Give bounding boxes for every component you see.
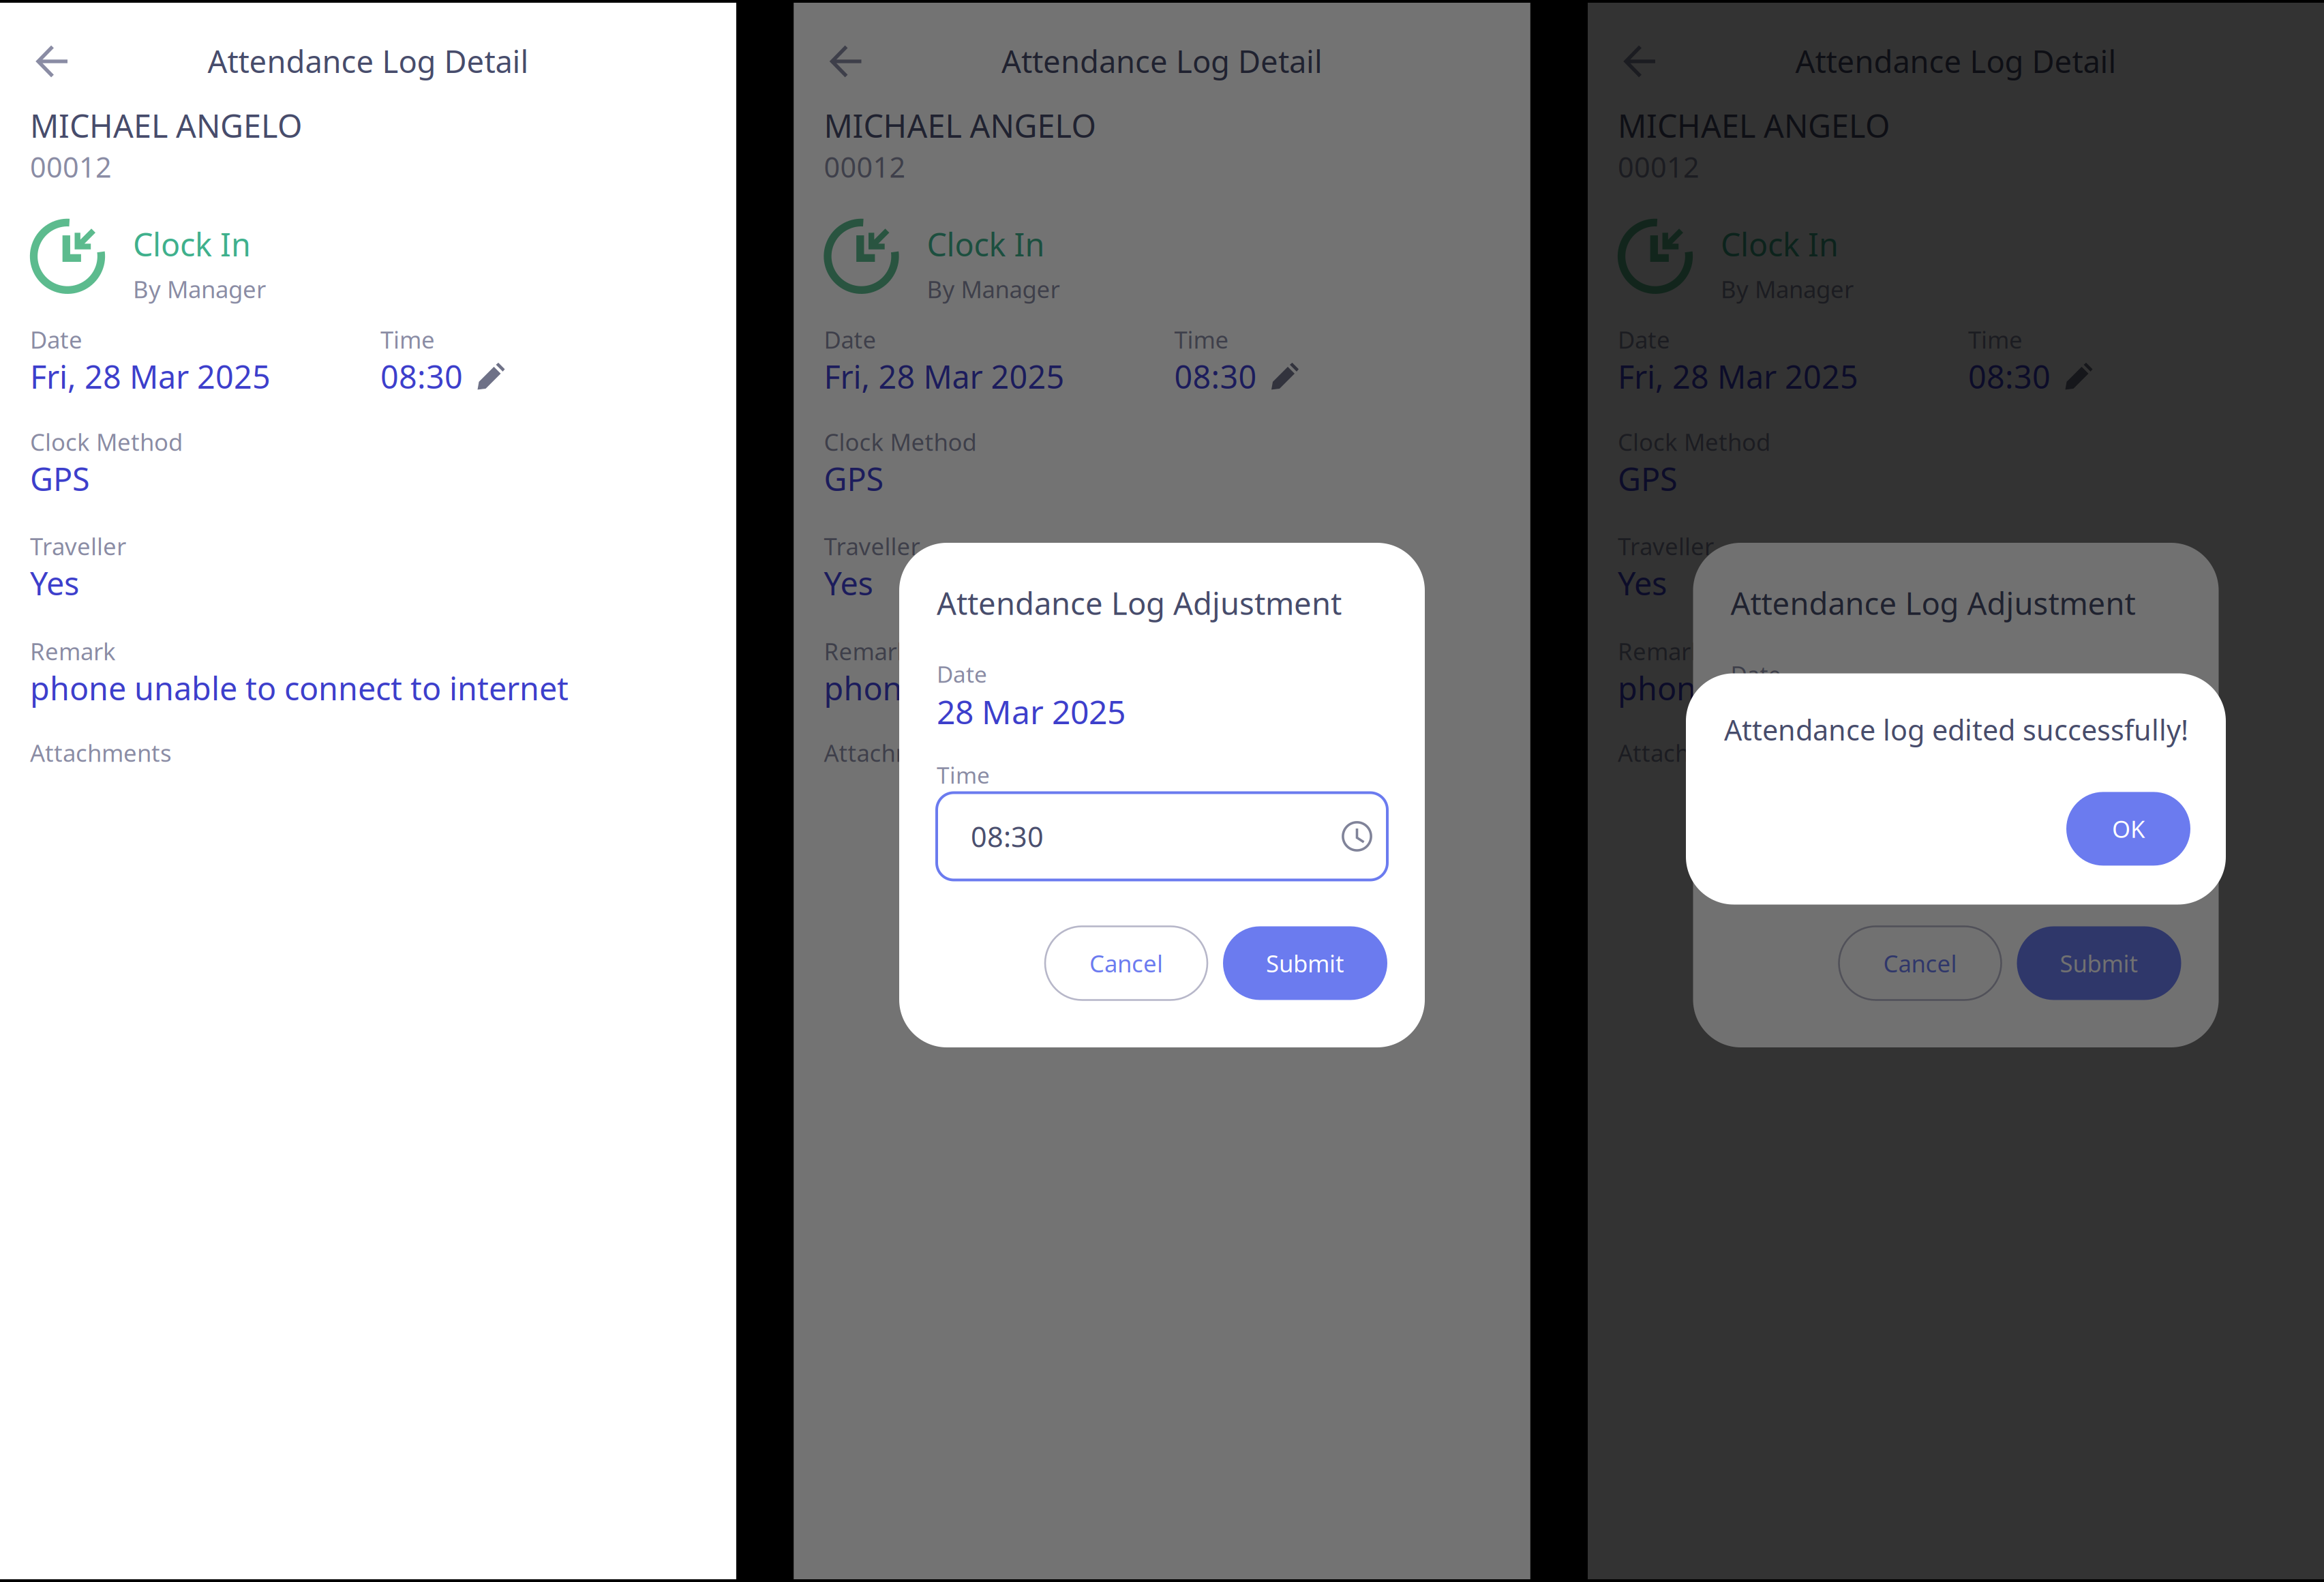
staticText: Attendance Log Adjustment <box>1731 582 2136 623</box>
staticText: Yes <box>30 562 79 604</box>
staticText: 00012 <box>30 148 112 185</box>
staticText: 28 Mar 2025 <box>1731 690 1919 733</box>
staticText: 00012 <box>1618 148 1700 185</box>
button[interactable]: OK <box>2066 792 2190 866</box>
button[interactable]: Cancel <box>1839 926 2001 1000</box>
staticText: Remark <box>824 635 910 667</box>
staticText: Remark <box>1618 635 1704 667</box>
staticText: Fri, 28 Mar 2025 <box>30 355 271 397</box>
staticText: 08:30 <box>971 818 1044 855</box>
staticText: Time <box>1174 324 1229 355</box>
staticText: By Manager <box>1721 273 1854 305</box>
staticText: Traveller <box>1618 530 1714 562</box>
staticText: Attachments <box>1618 737 1760 768</box>
staticText: Traveller <box>30 530 126 562</box>
staticText: Submit <box>1266 947 1344 979</box>
staticText: phone unable to connect to internet <box>1618 667 2156 709</box>
button[interactable]: Edit time <box>463 362 504 390</box>
button[interactable]: Cancel <box>1045 926 1207 1000</box>
staticText: OK <box>2112 813 2145 844</box>
staticText: Clock In <box>133 223 251 265</box>
staticText: Date <box>937 659 987 689</box>
staticText: Attachments <box>30 737 172 768</box>
staticText: Attendance Log Adjustment <box>937 582 1342 623</box>
staticText: 08:30 <box>1174 355 1257 397</box>
button[interactable]: Edit time <box>1257 362 1298 390</box>
button[interactable]: Submit <box>1223 926 1387 1000</box>
button[interactable]: Back <box>1588 3 2324 104</box>
staticText: Date <box>824 324 876 355</box>
staticText: 08:30 <box>1968 355 2051 397</box>
staticText: Submit <box>2060 947 2138 979</box>
staticText: MICHAEL ANGELO <box>1618 104 1890 147</box>
staticText: Time <box>380 324 435 355</box>
button[interactable]: Edit time <box>2051 362 2092 390</box>
staticText: Time <box>1968 324 2023 355</box>
staticText: Clock Method <box>824 426 977 457</box>
button[interactable]: Submit <box>2017 926 2181 1000</box>
staticText: Cancel <box>1883 947 1957 979</box>
staticText: GPS <box>30 457 90 500</box>
staticText: Attendance Log Detail <box>1001 41 1323 82</box>
staticText: By Manager <box>927 273 1060 305</box>
staticText: Attachments <box>824 737 966 768</box>
staticText: Fri, 28 Mar 2025 <box>1618 355 1858 397</box>
staticText: MICHAEL ANGELO <box>824 104 1096 147</box>
staticText: Clock Method <box>1618 426 1770 457</box>
staticText: 08:30 <box>380 355 463 397</box>
staticText: Clock Method <box>30 426 183 457</box>
staticText: Fri, 28 Mar 2025 <box>824 355 1065 397</box>
staticText: Clock In <box>927 223 1045 265</box>
staticText: GPS <box>1618 457 1678 500</box>
button[interactable]: Back <box>794 3 1530 104</box>
staticText: Attendance log edited successfully! <box>1724 711 2188 748</box>
staticText: Clock In <box>1721 223 1839 265</box>
staticText: Date <box>1731 659 1781 689</box>
staticText: Date <box>1618 324 1670 355</box>
staticText: phone unable to connect to internet <box>30 667 569 709</box>
staticText: GPS <box>824 457 884 500</box>
staticText: Traveller <box>824 530 920 562</box>
staticText: Date <box>30 324 82 355</box>
staticText: phone unable to connect to internet <box>824 667 1362 709</box>
staticText: Attendance Log Detail <box>208 41 529 82</box>
staticText: 28 Mar 2025 <box>937 690 1126 733</box>
staticText: By Manager <box>133 273 266 305</box>
staticText: Yes <box>1618 562 1667 604</box>
staticText: Cancel <box>1089 947 1163 979</box>
staticText: MICHAEL ANGELO <box>30 104 302 147</box>
staticText: 00012 <box>824 148 906 185</box>
staticText: Yes <box>824 562 873 604</box>
staticText: Remark <box>30 635 116 667</box>
staticText: Time <box>937 760 990 790</box>
button[interactable]: Back <box>0 3 736 104</box>
staticText: Attendance Log Detail <box>1795 41 2116 82</box>
